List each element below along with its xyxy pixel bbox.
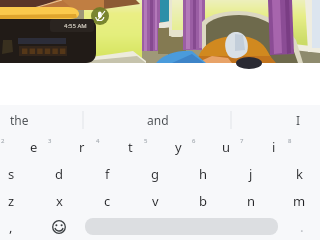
staticText: b [199, 192, 207, 210]
staticText: . [300, 218, 304, 236]
button[interactable]: v [131, 188, 179, 214]
staticText: z [8, 192, 15, 210]
button[interactable]: k [275, 161, 320, 187]
button[interactable]: f [83, 161, 131, 187]
button[interactable]: j [227, 161, 275, 187]
button[interactable]: z [0, 188, 35, 214]
staticText: 3 [48, 137, 52, 145]
staticText: the [10, 112, 29, 128]
button[interactable]: Space [85, 218, 278, 235]
button[interactable]: h [179, 161, 227, 187]
staticText: and [147, 112, 169, 128]
staticText: j [249, 165, 253, 183]
button[interactable]: m [275, 188, 320, 214]
staticText: 6 [192, 137, 196, 145]
staticText: 4:55 AM [64, 22, 87, 30]
staticText: 7 [240, 137, 244, 145]
staticText: u [222, 138, 231, 156]
button[interactable]: Game video [0, 0, 320, 63]
button[interactable]: e [10, 134, 58, 160]
staticText: 4 [96, 137, 100, 145]
staticText: 8 [288, 137, 292, 145]
button[interactable]: d [35, 161, 83, 187]
staticText: I [296, 112, 301, 128]
staticText: y [175, 138, 182, 156]
staticText: s [8, 165, 15, 183]
staticText: k [296, 165, 303, 183]
staticText: v [152, 192, 159, 210]
staticText: 2 [1, 137, 5, 145]
staticText: h [199, 165, 208, 183]
button[interactable]: and [147, 105, 183, 135]
button[interactable]: r [58, 134, 106, 160]
staticText: c [104, 192, 111, 210]
button[interactable]: g [131, 161, 179, 187]
staticText: , [9, 218, 13, 236]
button[interactable]: s [0, 161, 35, 187]
staticText: t [128, 138, 133, 156]
staticText: r [79, 138, 85, 156]
button[interactable]: I [296, 105, 320, 135]
button[interactable]: the [10, 105, 46, 135]
staticText: x [56, 192, 63, 210]
button[interactable]: y [154, 134, 202, 160]
button[interactable]: c [83, 188, 131, 214]
button[interactable]: u [202, 134, 250, 160]
button[interactable]: Period [293, 214, 311, 240]
button[interactable]: Comma [2, 214, 20, 240]
button[interactable]: t [106, 134, 154, 160]
staticText: f [105, 165, 110, 183]
button[interactable]: n [227, 188, 275, 214]
staticText: m [293, 192, 306, 210]
button[interactable]: b [179, 188, 227, 214]
staticText: 5 [144, 137, 148, 145]
staticText: g [151, 165, 159, 183]
staticText: i [272, 138, 276, 156]
button[interactable]: i [250, 134, 298, 160]
staticText: d [55, 165, 63, 183]
button[interactable]: x [35, 188, 83, 214]
staticText: n [247, 192, 256, 210]
staticText: e [30, 138, 38, 156]
button[interactable]: Emoji [46, 214, 72, 240]
